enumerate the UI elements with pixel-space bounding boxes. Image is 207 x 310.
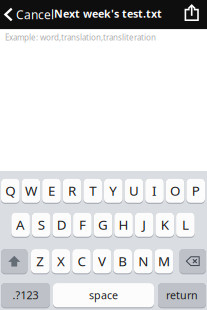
staticText: P — [192, 182, 200, 199]
staticText: return — [166, 288, 198, 302]
staticText: M — [158, 252, 170, 270]
button[interactable]: R — [63, 178, 81, 203]
staticText: Cancel — [16, 6, 54, 22]
staticText: Y — [109, 182, 117, 199]
button[interactable]: Cancel — [0, 0, 54, 29]
button[interactable]: F — [73, 212, 92, 237]
button[interactable]: N — [134, 248, 153, 274]
staticText: N — [138, 252, 148, 270]
staticText: S — [38, 216, 45, 233]
button[interactable]: Delete — [179, 248, 206, 274]
staticText: V — [98, 252, 106, 270]
button[interactable]: U — [125, 178, 143, 203]
staticText: U — [129, 182, 139, 199]
button[interactable]: Y — [104, 178, 123, 203]
button[interactable]: H — [114, 212, 133, 237]
button[interactable]: O — [166, 178, 184, 203]
button[interactable]: A — [11, 212, 30, 237]
staticText: A — [16, 216, 25, 233]
button[interactable]: X — [52, 248, 70, 274]
staticText: E — [48, 182, 55, 199]
button[interactable]: M — [155, 248, 173, 274]
button[interactable]: return — [158, 282, 206, 308]
button[interactable]: E — [42, 178, 61, 203]
staticText: Z — [36, 252, 44, 270]
button[interactable]: T — [83, 178, 102, 203]
staticText: B — [118, 252, 127, 270]
staticText: Q — [5, 182, 15, 199]
button[interactable]: Q — [1, 178, 20, 203]
button[interactable]: K — [155, 212, 174, 237]
button[interactable]: G — [94, 212, 112, 237]
staticText: D — [57, 216, 67, 233]
staticText: Next week's test.txt — [54, 6, 162, 21]
button[interactable]: W — [22, 178, 40, 203]
staticText: F — [79, 216, 86, 233]
button[interactable]: C — [72, 248, 91, 274]
staticText: T — [89, 182, 96, 199]
staticText: space — [89, 288, 118, 302]
staticText: O — [170, 182, 180, 199]
button[interactable]: space — [53, 282, 154, 308]
button[interactable]: I — [145, 178, 164, 203]
staticText: I — [152, 182, 157, 199]
staticText: H — [119, 216, 129, 233]
button[interactable]: B — [113, 248, 132, 274]
staticText: Example: word,translation,transliteratio… — [5, 32, 156, 43]
staticText: R — [68, 182, 76, 199]
button[interactable]: P — [186, 178, 205, 203]
staticText: J — [142, 216, 146, 233]
button[interactable]: L — [176, 212, 195, 237]
button[interactable]: Numbers and symbols — [1, 282, 50, 308]
button[interactable]: Next week's test.txt — [54, 0, 162, 29]
button[interactable]: V — [93, 248, 111, 274]
staticText: W — [25, 182, 37, 199]
staticText: C — [77, 252, 85, 270]
staticText: G — [98, 216, 108, 233]
button[interactable]: Shift — [1, 248, 27, 274]
staticText: .?123 — [12, 288, 38, 302]
staticText: X — [57, 252, 65, 270]
button[interactable]: S — [32, 212, 50, 237]
button[interactable]: Share — [176, 0, 207, 29]
button[interactable]: D — [52, 212, 71, 237]
button[interactable]: J — [135, 212, 153, 237]
staticText: L — [182, 216, 189, 233]
staticText: K — [161, 216, 169, 233]
button[interactable]: Z — [31, 248, 50, 274]
